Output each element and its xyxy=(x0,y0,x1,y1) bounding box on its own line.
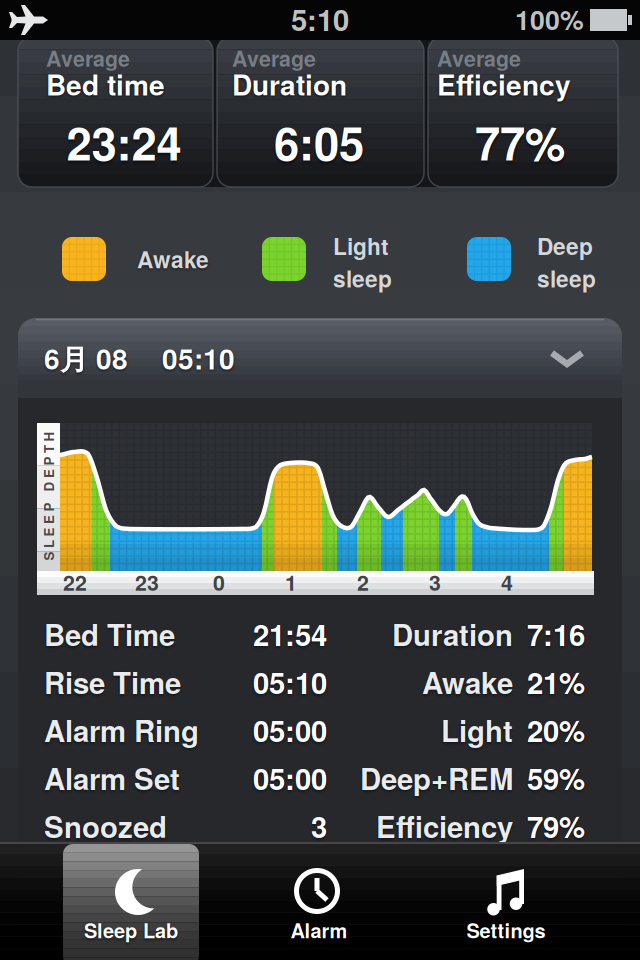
staticText: Awake xyxy=(422,661,513,702)
staticText: 22 xyxy=(63,567,87,597)
staticText: Alarm Set xyxy=(44,757,180,798)
staticText: Alarm xyxy=(290,916,347,944)
staticText: Sleep Lab xyxy=(84,916,178,944)
staticText: 0 xyxy=(213,567,225,597)
staticText: Duration xyxy=(232,64,347,104)
button[interactable]: Alarm xyxy=(254,842,384,960)
staticText: 59% xyxy=(527,757,585,798)
staticText: 23 xyxy=(135,567,159,597)
staticText: Alarm Ring xyxy=(44,709,199,750)
staticText: Deep+REM xyxy=(360,757,513,798)
staticText: 05:00 xyxy=(253,709,327,750)
staticText: Light xyxy=(441,709,513,750)
staticText: Average xyxy=(46,43,130,73)
staticText: Efficiency xyxy=(376,805,513,846)
staticText: 5:10 xyxy=(291,0,349,39)
staticText: 23:24 xyxy=(66,110,181,174)
staticText: 6:05 xyxy=(274,110,364,174)
staticText: Rise Time xyxy=(44,661,181,702)
staticText: 1 xyxy=(285,567,297,597)
staticText: sleep xyxy=(537,262,596,294)
staticText: sleep xyxy=(333,262,392,294)
staticText: Average xyxy=(232,43,316,73)
staticText: Duration xyxy=(392,613,513,654)
staticText: 4 xyxy=(501,567,513,597)
staticText: 3 xyxy=(311,805,327,846)
staticText: 20% xyxy=(527,709,585,750)
staticText: 7:16 xyxy=(527,613,585,654)
staticText: Efficiency xyxy=(437,64,571,104)
staticText: Light xyxy=(333,230,389,261)
staticText: 21:54 xyxy=(253,613,327,654)
staticText: Settings xyxy=(466,916,545,944)
staticText: 77% xyxy=(475,110,565,174)
staticText: 2 xyxy=(357,567,369,597)
staticText: Bed time xyxy=(46,64,165,104)
staticText: 05:00 xyxy=(253,757,327,798)
button[interactable]: Sleep Lab xyxy=(63,844,199,960)
button[interactable]: Settings xyxy=(441,842,571,960)
staticText: 05:10 xyxy=(162,338,235,378)
staticText: SLEEP DEPTH xyxy=(0,487,113,505)
staticText: 21% xyxy=(527,661,585,702)
staticText: Bed Time xyxy=(44,613,175,654)
button[interactable]: 6月 08 xyxy=(18,318,622,398)
staticText: 79% xyxy=(527,805,585,846)
staticText: Snoozed xyxy=(44,805,167,846)
staticText: 05:10 xyxy=(253,661,327,702)
staticText: Average xyxy=(437,43,521,73)
staticText: Awake xyxy=(137,243,209,275)
staticText: 3 xyxy=(429,567,441,597)
staticText: 6月 08 xyxy=(44,338,128,378)
staticText: 100% xyxy=(515,0,584,38)
staticText: Deep xyxy=(537,230,593,261)
